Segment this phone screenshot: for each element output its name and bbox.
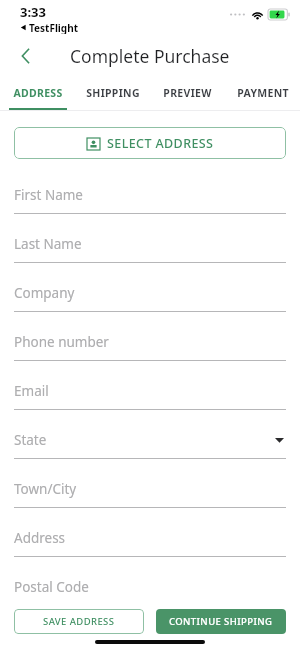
- staticText: Town/City: [14, 480, 77, 498]
- staticText: Complete Purchase: [70, 44, 230, 68]
- button[interactable]: First Name: [14, 177, 286, 226]
- staticText: SHIPPING: [86, 86, 140, 100]
- staticText: Last Name: [14, 235, 82, 253]
- staticText: SAVE ADDRESS: [43, 615, 115, 628]
- button[interactable]: Town/City: [14, 471, 286, 520]
- button[interactable]: ADDRESS: [0, 78, 75, 107]
- button[interactable]: Email: [14, 373, 286, 422]
- staticText: SELECT ADDRESS: [107, 135, 214, 152]
- button[interactable]: Last Name: [14, 226, 286, 275]
- staticText: Phone number: [14, 333, 109, 351]
- button[interactable]: PREVIEW: [150, 78, 225, 107]
- button[interactable]: Back: [6, 36, 46, 76]
- staticText: ADDRESS: [13, 86, 63, 100]
- staticText: Postal Code: [14, 578, 89, 596]
- staticText: State: [14, 431, 47, 449]
- button[interactable]: Postal Code: [14, 569, 286, 618]
- staticText: Address: [14, 529, 66, 547]
- button[interactable]: SELECT ADDRESS: [14, 127, 286, 159]
- staticText: Email: [14, 382, 49, 400]
- button[interactable]: SAVE ADDRESS: [14, 609, 144, 634]
- staticText: First Name: [14, 186, 83, 204]
- button[interactable]: Phone number: [14, 324, 286, 373]
- staticText: 3:33: [20, 3, 46, 21]
- staticText: Company: [14, 284, 75, 302]
- staticText: TestFlight: [29, 21, 79, 34]
- staticText: CONTINUE SHIPPING: [169, 615, 273, 628]
- button[interactable]: Address: [14, 520, 286, 569]
- button[interactable]: PAYMENT: [225, 78, 300, 107]
- staticText: PAYMENT: [237, 86, 289, 100]
- button[interactable]: CONTINUE SHIPPING: [156, 609, 286, 634]
- button[interactable]: Company: [14, 275, 286, 324]
- button[interactable]: State: [14, 422, 286, 471]
- button[interactable]: SHIPPING: [75, 78, 150, 107]
- staticText: PREVIEW: [163, 86, 212, 100]
